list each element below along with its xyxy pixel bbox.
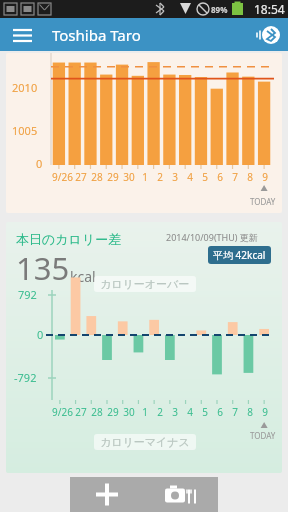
staticText: 4 (187, 170, 193, 184)
staticText: 1005 (12, 123, 38, 138)
staticText: 135 (16, 247, 70, 289)
button[interactable]: Bluetooth connection (252, 20, 282, 50)
staticText: TODAY (250, 430, 276, 441)
staticText: 28 (91, 405, 103, 419)
staticText: 1 (142, 170, 148, 184)
staticText: 平均 42kcal (213, 248, 266, 262)
staticText: 28 (91, 170, 103, 184)
staticText: 8 (247, 170, 253, 184)
staticText: 9/26 (52, 170, 73, 184)
staticText: 6 (217, 405, 223, 419)
staticText: 89% (211, 4, 228, 15)
staticText: 2 (157, 405, 163, 419)
staticText: -792 (14, 370, 37, 385)
staticText: 27 (75, 170, 87, 184)
staticText: カロリーオーバー (100, 277, 190, 291)
staticText: 792 (18, 287, 37, 302)
staticText: 29 (107, 405, 119, 419)
button[interactable]: Record meal photo (144, 477, 218, 512)
staticText: 9/26 (52, 405, 73, 419)
button[interactable]: 本日のカロリー差 (6, 222, 282, 473)
staticText: 2010 (12, 80, 38, 95)
staticText: 2 (157, 170, 163, 184)
staticText: 5 (202, 405, 208, 419)
staticText: 0 (36, 156, 43, 171)
staticText: 3 (172, 405, 178, 419)
staticText: 7 (232, 405, 238, 419)
button[interactable]: Add (70, 477, 144, 512)
staticText: 1 (142, 405, 148, 419)
staticText: カロリーマイナス (100, 435, 190, 449)
staticText: 本日のカロリー差 (16, 231, 122, 247)
staticText: 8 (247, 405, 253, 419)
staticText: Toshiba Taro (52, 25, 141, 45)
button[interactable]: 平均 42kcal (213, 248, 266, 262)
button[interactable]: Menu (8, 20, 38, 50)
staticText: 4 (187, 405, 193, 419)
staticText: 2014/10/09(THU) 更新 (166, 231, 258, 243)
staticText: 9 (262, 405, 268, 419)
staticText: 0 (37, 327, 44, 342)
staticText: 30 (123, 170, 135, 184)
staticText: kcal (70, 267, 96, 286)
staticText: 27 (75, 405, 87, 419)
staticText: TODAY (250, 196, 276, 207)
button[interactable]: 2010 (6, 53, 282, 213)
staticText: 9 (262, 170, 268, 184)
staticText: 29 (107, 170, 119, 184)
staticText: 7 (232, 170, 238, 184)
staticText: 3 (172, 170, 178, 184)
staticText: 30 (123, 405, 135, 419)
staticText: 6 (217, 170, 223, 184)
staticText: 5 (202, 170, 208, 184)
staticText: 18:54 (254, 1, 285, 17)
